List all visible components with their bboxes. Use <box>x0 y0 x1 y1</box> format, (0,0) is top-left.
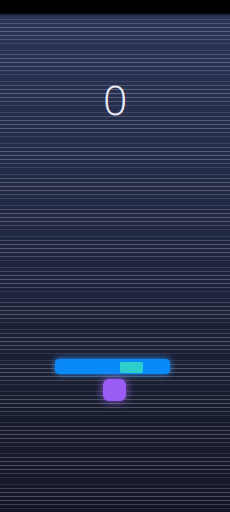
button[interactable]: Play area — drag to move the paddle <box>0 16 230 512</box>
staticText: 0 <box>103 71 127 127</box>
